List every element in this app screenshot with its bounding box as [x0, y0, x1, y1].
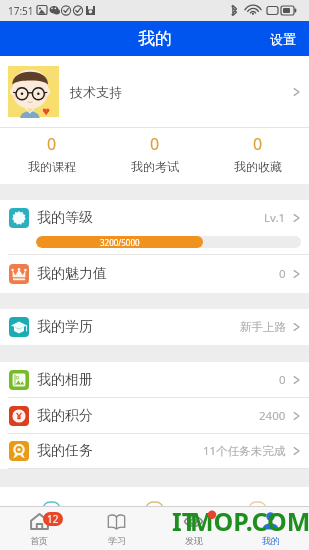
button[interactable]: 我的学历 — [0, 309, 309, 345]
other: Discover — [183, 511, 204, 532]
staticText: 17:51 — [8, 4, 34, 18]
staticText: Lv.1 — [264, 210, 286, 226]
staticText: 我的魅力值 — [37, 265, 107, 283]
button[interactable]: Discover — [155, 507, 232, 550]
staticText: 我的积分 — [37, 407, 93, 425]
button[interactable]: 我的魅力值 — [0, 255, 309, 293]
button[interactable]: 我的相册 — [0, 362, 309, 397]
staticText: MOP.COM — [190, 504, 309, 538]
staticText: 3200/5000 — [100, 237, 140, 248]
staticText: IT — [172, 504, 197, 538]
staticText: 2400 — [259, 408, 286, 424]
staticText: 我的考试 — [131, 159, 179, 174]
staticText: 0 — [279, 266, 286, 282]
staticText: 技术支持 — [70, 84, 122, 100]
staticText: 我的任务 — [37, 442, 93, 460]
staticText: 0 — [47, 133, 57, 155]
staticText: 我的学历 — [37, 318, 93, 336]
other: Mine — [260, 511, 281, 532]
staticText: 首页 — [30, 535, 48, 546]
button[interactable]: 技术支持 — [0, 56, 309, 127]
staticText: 我的 — [262, 535, 280, 546]
button[interactable]: 0 — [206, 128, 309, 184]
staticText: 学习 — [108, 535, 126, 546]
staticText: 我的 — [138, 28, 172, 49]
staticText: 我的等级 — [37, 209, 93, 227]
button[interactable]: Home — [0, 507, 78, 550]
other: Study — [106, 511, 127, 532]
staticText: 设置 — [270, 31, 296, 47]
staticText: 0 — [150, 133, 160, 155]
staticText: 发现 — [185, 535, 203, 546]
button[interactable]: 0 — [103, 128, 206, 184]
staticText: 我的相册 — [37, 371, 93, 389]
button[interactable]: 我的等级 — [0, 200, 309, 236]
button[interactable]: Study — [78, 507, 155, 550]
staticText: 11个任务未完成 — [203, 443, 286, 459]
button[interactable]: 我的任务 — [0, 434, 309, 468]
staticText: 我的收藏 — [234, 159, 282, 174]
staticText: 我的课程 — [28, 159, 76, 174]
button[interactable]: 0 — [0, 128, 103, 184]
button[interactable]: Mine — [232, 507, 309, 550]
staticText: 12 — [47, 512, 59, 526]
button[interactable]: 设置 — [260, 21, 309, 56]
staticText: 0 — [279, 372, 286, 388]
staticText: 新手上路 — [240, 320, 286, 334]
staticText: 0 — [253, 133, 263, 155]
other: Home — [29, 511, 50, 532]
button[interactable]: 我的积分 — [0, 398, 309, 433]
